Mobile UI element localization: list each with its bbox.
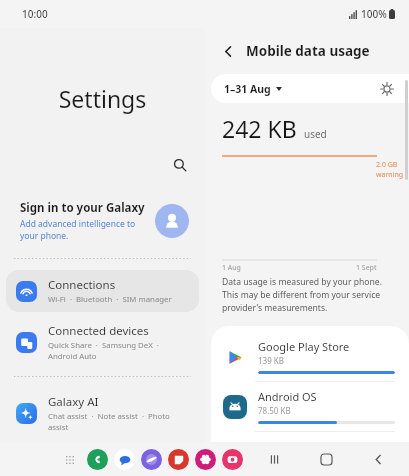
button[interactable]: Camera — [222, 449, 243, 470]
staticText: Galaxy AI — [48, 394, 99, 410]
button[interactable]: Galaxy AI — [6, 387, 199, 439]
button[interactable]: Notes — [168, 449, 189, 470]
button[interactable]: Samsung account — [155, 204, 189, 238]
staticText: 24.1 KB — [258, 455, 287, 466]
staticText: 242 KB — [222, 113, 297, 144]
button[interactable]: Google Play services — [211, 432, 409, 476]
button[interactable]: Modes and Routines — [6, 443, 199, 474]
staticText: Mobile data usage — [246, 42, 370, 60]
staticText: Data usage is measured by your phone. Th… — [222, 276, 387, 313]
staticText: Connected devices — [48, 323, 149, 339]
button[interactable]: Recent apps — [261, 446, 287, 472]
button[interactable]: Connections — [6, 270, 199, 312]
staticText: 10:00 — [22, 7, 48, 21]
button[interactable]: Sign in to your Galaxy — [0, 196, 205, 246]
staticText: used — [304, 127, 327, 141]
staticText: Quick Share · Samsung DeX · Android Auto — [48, 340, 189, 361]
button[interactable]: 1–31 Aug — [222, 79, 284, 99]
staticText: 100% — [361, 7, 387, 21]
staticText: Connections — [48, 277, 116, 293]
button[interactable]: Data usage settings — [377, 79, 397, 99]
button[interactable]: Back — [365, 446, 391, 472]
button[interactable]: Google Play Store — [211, 332, 409, 381]
staticText: 78.50 KB — [258, 405, 291, 416]
button[interactable]: Android OS — [211, 382, 409, 431]
button[interactable]: Connected devices — [6, 316, 199, 368]
button[interactable]: Messages — [114, 449, 135, 470]
staticText: Android OS — [258, 389, 317, 404]
button[interactable]: Internet — [141, 449, 162, 470]
button[interactable]: Back — [217, 40, 239, 62]
staticText: Chat assist · Note assist · Photo assist — [48, 411, 189, 432]
staticText: Modes and Routines — [48, 450, 159, 466]
button[interactable]: All apps — [60, 450, 80, 470]
button[interactable]: Home — [313, 446, 339, 472]
staticText: 1–31 Aug — [224, 82, 271, 96]
staticText: 1 Aug — [222, 263, 241, 273]
button[interactable]: Search settings — [167, 152, 193, 178]
staticText: Google Play services — [258, 439, 364, 454]
button[interactable]: Phone — [87, 449, 108, 470]
staticText: Sign in to your Galaxy — [20, 200, 145, 216]
staticText: Add advanced intelligence to your phone. — [20, 218, 145, 242]
staticText: 1 Sept — [356, 263, 377, 273]
staticText: 2.0 GB — [376, 160, 398, 170]
button[interactable]: Gallery — [195, 449, 216, 470]
staticText: 139 KB — [258, 355, 284, 366]
staticText: Settings — [0, 83, 205, 114]
staticText: Wi-Fi · Bluetooth · SIM manager — [48, 294, 172, 305]
staticText: warning — [376, 170, 404, 180]
staticText: Google Play Store — [258, 339, 350, 354]
